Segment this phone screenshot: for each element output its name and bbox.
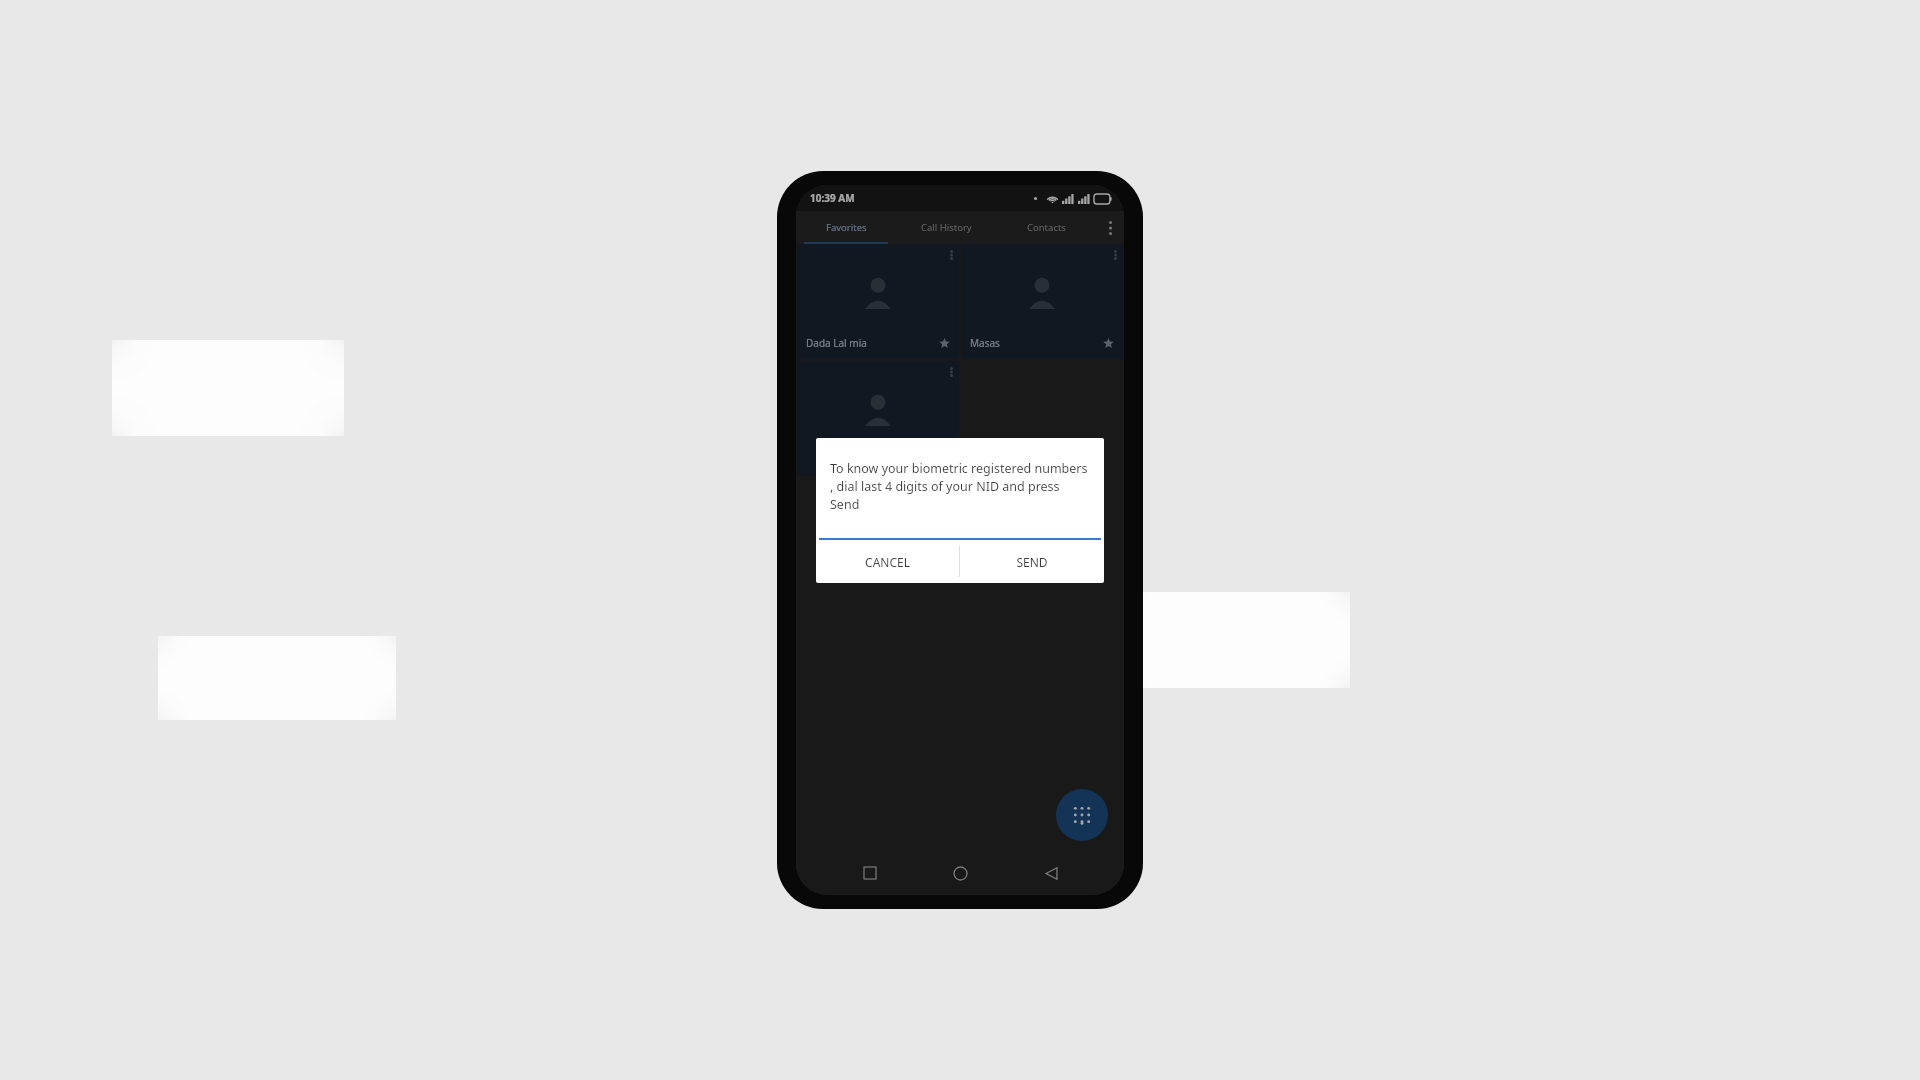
button[interactable]: Contacts bbox=[996, 211, 1096, 244]
button[interactable]: CANCEL bbox=[816, 540, 959, 583]
staticText: Favorites bbox=[826, 221, 867, 234]
button[interactable] bbox=[797, 361, 959, 476]
button[interactable]: Favorites bbox=[796, 211, 896, 244]
staticText: Call History bbox=[921, 221, 972, 234]
staticText: To know your biometric registered number… bbox=[830, 460, 1090, 512]
button[interactable]: Masas bbox=[961, 244, 1123, 359]
staticText: 10:39 AM bbox=[810, 191, 855, 205]
staticText: Dada Lal mia bbox=[806, 336, 939, 350]
button[interactable]: Back bbox=[1034, 856, 1068, 890]
staticText: Contacts bbox=[1027, 221, 1066, 234]
button[interactable]: SEND bbox=[960, 540, 1104, 583]
button[interactable]: More options bbox=[1096, 211, 1124, 244]
button[interactable]: Home bbox=[943, 856, 977, 890]
button[interactable]: Dialpad bbox=[1056, 789, 1108, 841]
staticText: SEND bbox=[1016, 554, 1048, 570]
staticText: Masas bbox=[970, 336, 1103, 350]
button[interactable]: Recents bbox=[853, 856, 887, 890]
button[interactable]: Call History bbox=[896, 211, 996, 244]
staticText: CANCEL bbox=[865, 554, 910, 570]
button[interactable]: Dada Lal mia bbox=[797, 244, 959, 359]
